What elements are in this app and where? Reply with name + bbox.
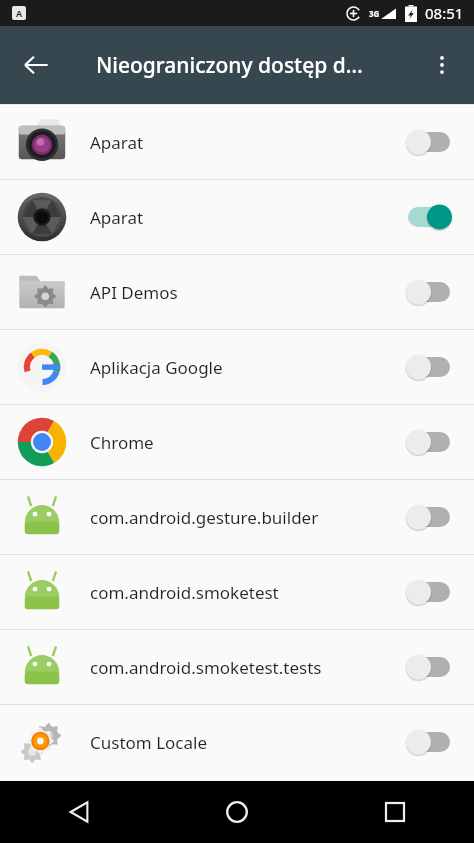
button[interactable]: Home — [158, 781, 316, 843]
staticText: Aplikacja Google — [90, 356, 402, 379]
button[interactable]: Toggle Custom Locale — [402, 722, 456, 762]
staticText: API Demos — [90, 281, 402, 304]
staticText: Nieograniczony dostęp d… — [96, 51, 363, 80]
button[interactable]: com.android.gesture.builder — [0, 480, 474, 554]
staticText: Aparat — [90, 206, 402, 229]
button[interactable]: Aparat — [0, 105, 474, 179]
staticText: Aparat — [90, 131, 402, 154]
button[interactable]: Toggle com.android.gesture.builder — [402, 497, 456, 537]
staticText: 3G — [369, 8, 380, 19]
button[interactable]: API Demos — [0, 255, 474, 329]
button[interactable]: Toggle com.android.smoketest — [402, 572, 456, 612]
button[interactable]: Aplikacja Google — [0, 330, 474, 404]
staticText: com.android.smoketest — [90, 581, 402, 604]
button[interactable]: Toggle API Demos — [402, 272, 456, 312]
staticText: 08:51 — [425, 3, 464, 23]
button[interactable]: Toggle com.android.smoketest.tests — [402, 647, 456, 687]
staticText: Custom Locale — [90, 731, 402, 754]
staticText: com.android.smoketest.tests — [90, 656, 402, 679]
staticText: A — [16, 7, 23, 19]
button[interactable]: Custom Locale — [0, 705, 474, 779]
button[interactable]: Back — [8, 37, 64, 93]
button[interactable]: com.android.smoketest.tests — [0, 630, 474, 704]
staticText: Chrome — [90, 431, 402, 454]
button[interactable]: com.android.smoketest — [0, 555, 474, 629]
button[interactable]: Toggle Chrome — [402, 422, 456, 462]
button[interactable]: Recent apps — [316, 781, 474, 843]
staticText: com.android.gesture.builder — [90, 506, 402, 529]
button[interactable]: Aparat — [0, 180, 474, 254]
button[interactable]: Back — [0, 781, 158, 843]
button[interactable]: Toggle Aplikacja Google — [402, 347, 456, 387]
button[interactable]: Chrome — [0, 405, 474, 479]
button[interactable]: More options — [416, 39, 468, 91]
button[interactable]: Toggle Aparat — [402, 122, 456, 162]
button[interactable]: Toggle Aparat — [402, 197, 456, 237]
